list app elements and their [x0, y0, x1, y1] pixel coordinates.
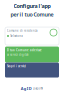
- staticText: AgID: [21, 86, 32, 91]
- button[interactable]: Comune di residenza: [5, 27, 59, 45]
- staticText: per il tuo Comune: [10, 11, 53, 18]
- staticText: Comune di residenza: [7, 29, 37, 33]
- staticText: ai servizi digitali: [7, 53, 29, 56]
- staticText: Seleziona: [10, 34, 22, 38]
- button[interactable]: Scopri i servizi: [5, 63, 59, 78]
- staticText: Il tuo Comune aderisce: [7, 49, 42, 52]
- staticText: Configura l'app: [13, 2, 50, 10]
- staticText: pagoPA: [33, 87, 43, 90]
- staticText: Scopri i servizi: [7, 65, 26, 68]
